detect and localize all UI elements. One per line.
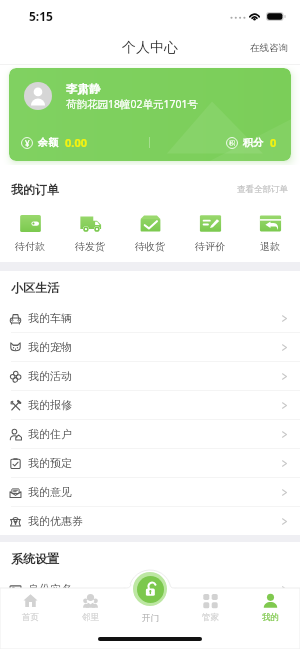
button[interactable]: 管家 bbox=[180, 588, 240, 649]
button[interactable]: 我的预定 bbox=[0, 449, 300, 478]
staticText: 我的车辆 bbox=[28, 311, 72, 325]
staticText: 0.00 bbox=[65, 135, 87, 150]
button[interactable]: 待付款 bbox=[0, 213, 60, 253]
staticText: 退款 bbox=[260, 240, 280, 253]
staticText: 我的报修 bbox=[28, 398, 72, 412]
button[interactable]: 我的住户 bbox=[0, 420, 300, 449]
staticText: 在线咨询 bbox=[250, 42, 288, 54]
button[interactable]: 待评价 bbox=[180, 213, 240, 253]
staticText: 查看全部订单 bbox=[237, 184, 288, 195]
staticText: 我的预定 bbox=[28, 456, 72, 470]
staticText: 5:15 bbox=[29, 8, 53, 24]
button[interactable]: 我的意见 bbox=[0, 478, 300, 507]
button[interactable]: 邻里 bbox=[60, 588, 120, 649]
staticText: 我的订单 bbox=[11, 182, 59, 197]
button[interactable]: 退款 bbox=[240, 213, 300, 253]
staticText: 待评价 bbox=[195, 240, 225, 253]
button[interactable]: 开门 bbox=[133, 572, 167, 606]
button[interactable]: 首页 bbox=[0, 588, 60, 649]
staticText: 我的活动 bbox=[28, 369, 72, 383]
button[interactable]: 我的 bbox=[240, 588, 300, 649]
staticText: 李肃静 bbox=[66, 82, 101, 96]
staticText: 待付款 bbox=[15, 240, 45, 253]
staticText: 首页 bbox=[22, 612, 39, 623]
staticText: 个人中心 bbox=[122, 39, 178, 57]
staticText: 积分 bbox=[243, 136, 263, 149]
staticText: 积 bbox=[229, 139, 235, 147]
staticText: 邻里 bbox=[82, 612, 99, 623]
staticText: 我的优惠券 bbox=[28, 514, 83, 528]
button[interactable]: 在线咨询 bbox=[238, 37, 300, 59]
staticText: 系统设置 bbox=[11, 551, 59, 566]
button[interactable]: 待发货 bbox=[60, 213, 120, 253]
button[interactable]: 我的优惠券 bbox=[0, 507, 300, 535]
button[interactable]: 我的报修 bbox=[0, 391, 300, 420]
button[interactable]: 身份实名 bbox=[0, 575, 300, 604]
button[interactable]: 李肃静 bbox=[9, 68, 291, 161]
staticText: ¥ bbox=[25, 138, 30, 149]
button[interactable]: 查看全部订单 bbox=[233, 178, 292, 201]
staticText: 0 bbox=[270, 135, 277, 150]
staticText: 待发货 bbox=[75, 240, 105, 253]
staticText: 待收货 bbox=[135, 240, 165, 253]
staticText: 余额 bbox=[38, 136, 58, 149]
staticText: 荷韵花园18幢02单元1701号 bbox=[66, 97, 199, 111]
button[interactable]: 我的车辆 bbox=[0, 304, 300, 333]
button[interactable]: 我的宠物 bbox=[0, 333, 300, 362]
staticText: 小区生活 bbox=[11, 280, 59, 295]
staticText: 身份实名 bbox=[28, 582, 72, 596]
staticText: 管家 bbox=[202, 612, 219, 623]
staticText: 我的 bbox=[262, 612, 279, 623]
staticText: 开门 bbox=[142, 613, 159, 624]
staticText: 我的意见 bbox=[28, 485, 72, 499]
button[interactable]: 待收货 bbox=[120, 213, 180, 253]
staticText: 我的住户 bbox=[28, 427, 72, 441]
staticText: 我的宠物 bbox=[28, 340, 72, 354]
button[interactable]: 我的活动 bbox=[0, 362, 300, 391]
